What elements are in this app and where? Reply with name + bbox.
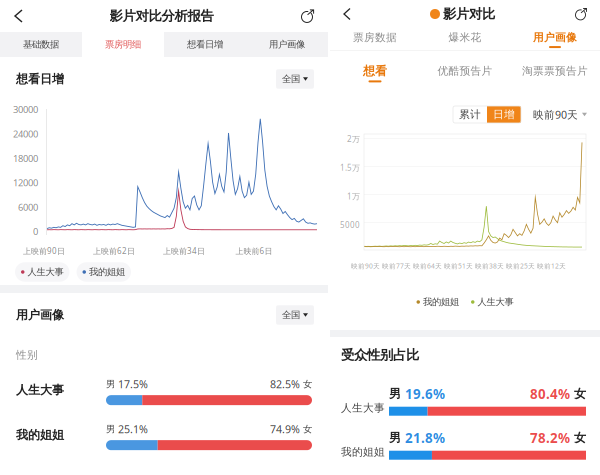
staticText: 映前90天 bbox=[351, 262, 380, 270]
button[interactable]: 票房数据 bbox=[330, 28, 420, 51]
staticText: 全国 bbox=[282, 309, 300, 321]
staticText: 男 bbox=[106, 423, 118, 435]
staticText: 累计 bbox=[459, 108, 481, 121]
staticText: 女 bbox=[300, 423, 312, 435]
staticText: 影片对比 bbox=[443, 6, 495, 22]
staticText: 淘票票预告片 bbox=[522, 64, 588, 77]
staticText: 想看日增 bbox=[187, 39, 223, 50]
button[interactable]: Back bbox=[330, 0, 360, 28]
staticText: 80.4% bbox=[530, 385, 570, 403]
staticText: 用户画像 bbox=[533, 31, 577, 44]
staticText: 上映前34日 bbox=[163, 246, 205, 256]
staticText: 爆米花 bbox=[448, 31, 481, 44]
staticText: 男 bbox=[389, 386, 405, 401]
staticText: 女 bbox=[570, 430, 586, 445]
staticText: 我的姐姐 bbox=[89, 266, 125, 278]
staticText: 1.5万 bbox=[340, 162, 360, 173]
staticText: 人生大事 bbox=[27, 266, 63, 278]
button[interactable]: 累计 bbox=[453, 106, 487, 123]
staticText: 人生大事 bbox=[477, 296, 513, 308]
staticText: 21.8% bbox=[405, 429, 445, 447]
staticText: 6000 bbox=[18, 201, 38, 213]
staticText: 78.2% bbox=[530, 429, 570, 447]
staticText: 82.5% bbox=[270, 377, 300, 391]
staticText: 人生大事 bbox=[16, 383, 64, 397]
button[interactable]: 爆米花 bbox=[420, 28, 510, 51]
staticText: 用户画像 bbox=[16, 308, 64, 322]
staticText: 基础数据 bbox=[23, 39, 59, 50]
staticText: 18000 bbox=[13, 152, 38, 164]
button[interactable]: 基础数据 bbox=[0, 32, 82, 57]
staticText: 优酷预告片 bbox=[437, 64, 492, 77]
button[interactable]: 全国 bbox=[276, 306, 314, 324]
staticText: 上映前62日 bbox=[93, 246, 135, 256]
staticText: 我的姐姐 bbox=[341, 445, 385, 458]
staticText: 0 bbox=[33, 225, 38, 238]
staticText: 票房明细 bbox=[105, 39, 141, 50]
staticText: 映前51天 bbox=[444, 262, 473, 270]
staticText: 映前64天 bbox=[413, 262, 442, 270]
staticText: 我的姐姐 bbox=[16, 428, 64, 442]
button[interactable]: 淘票票预告片 bbox=[510, 51, 600, 95]
staticText: 30000 bbox=[13, 103, 38, 116]
button[interactable]: Share bbox=[289, 0, 328, 32]
button[interactable]: 票房明细 bbox=[82, 32, 164, 57]
staticText: 74.9% bbox=[270, 422, 300, 436]
staticText: 上映前90日 bbox=[23, 246, 65, 256]
button[interactable]: 想看 bbox=[330, 51, 420, 95]
staticText: 票房数据 bbox=[353, 31, 397, 44]
staticText: 上映前6日 bbox=[235, 246, 272, 256]
staticText: 人生大事 bbox=[341, 401, 385, 414]
staticText: 男 bbox=[106, 378, 118, 390]
button[interactable]: 想看日增 bbox=[164, 32, 246, 57]
staticText: 日增 bbox=[493, 108, 515, 121]
button[interactable]: 用户画像 bbox=[510, 28, 600, 51]
staticText: 25.1% bbox=[118, 422, 148, 436]
staticText: 24000 bbox=[13, 128, 38, 140]
staticText: 1万 bbox=[347, 191, 360, 202]
staticText: 19.6% bbox=[405, 385, 445, 403]
button[interactable]: Back bbox=[0, 0, 34, 32]
staticText: 映前77天 bbox=[382, 262, 411, 270]
staticText: 影片对比分析报告 bbox=[109, 8, 213, 24]
staticText: 想看日增 bbox=[16, 72, 64, 86]
staticText: 女 bbox=[570, 386, 586, 401]
staticText: 受众性别占比 bbox=[341, 347, 419, 363]
staticText: 12000 bbox=[13, 176, 38, 189]
button[interactable]: 映前90天 bbox=[521, 106, 600, 123]
staticText: 想看 bbox=[363, 64, 387, 78]
button[interactable]: 优酷预告片 bbox=[420, 51, 510, 95]
staticText: 全国 bbox=[282, 73, 300, 85]
button[interactable]: 日增 bbox=[487, 106, 521, 123]
staticText: 5000 bbox=[340, 220, 360, 230]
staticText: 映前25天 bbox=[506, 262, 535, 270]
staticText: 映前12天 bbox=[537, 262, 566, 270]
staticText: 男 bbox=[389, 430, 405, 445]
staticText: 我的姐姐 bbox=[423, 296, 459, 308]
staticText: 女 bbox=[300, 378, 312, 390]
button[interactable]: 用户画像 bbox=[246, 32, 328, 57]
staticText: 2万 bbox=[347, 134, 360, 144]
button[interactable]: 全国 bbox=[276, 70, 314, 88]
staticText: 性别 bbox=[16, 348, 38, 361]
staticText: 映前38天 bbox=[475, 262, 504, 270]
button[interactable]: Share bbox=[565, 0, 600, 28]
staticText: 映前90天 bbox=[533, 107, 578, 122]
staticText: 用户画像 bbox=[269, 39, 305, 50]
staticText: 17.5% bbox=[118, 377, 148, 391]
